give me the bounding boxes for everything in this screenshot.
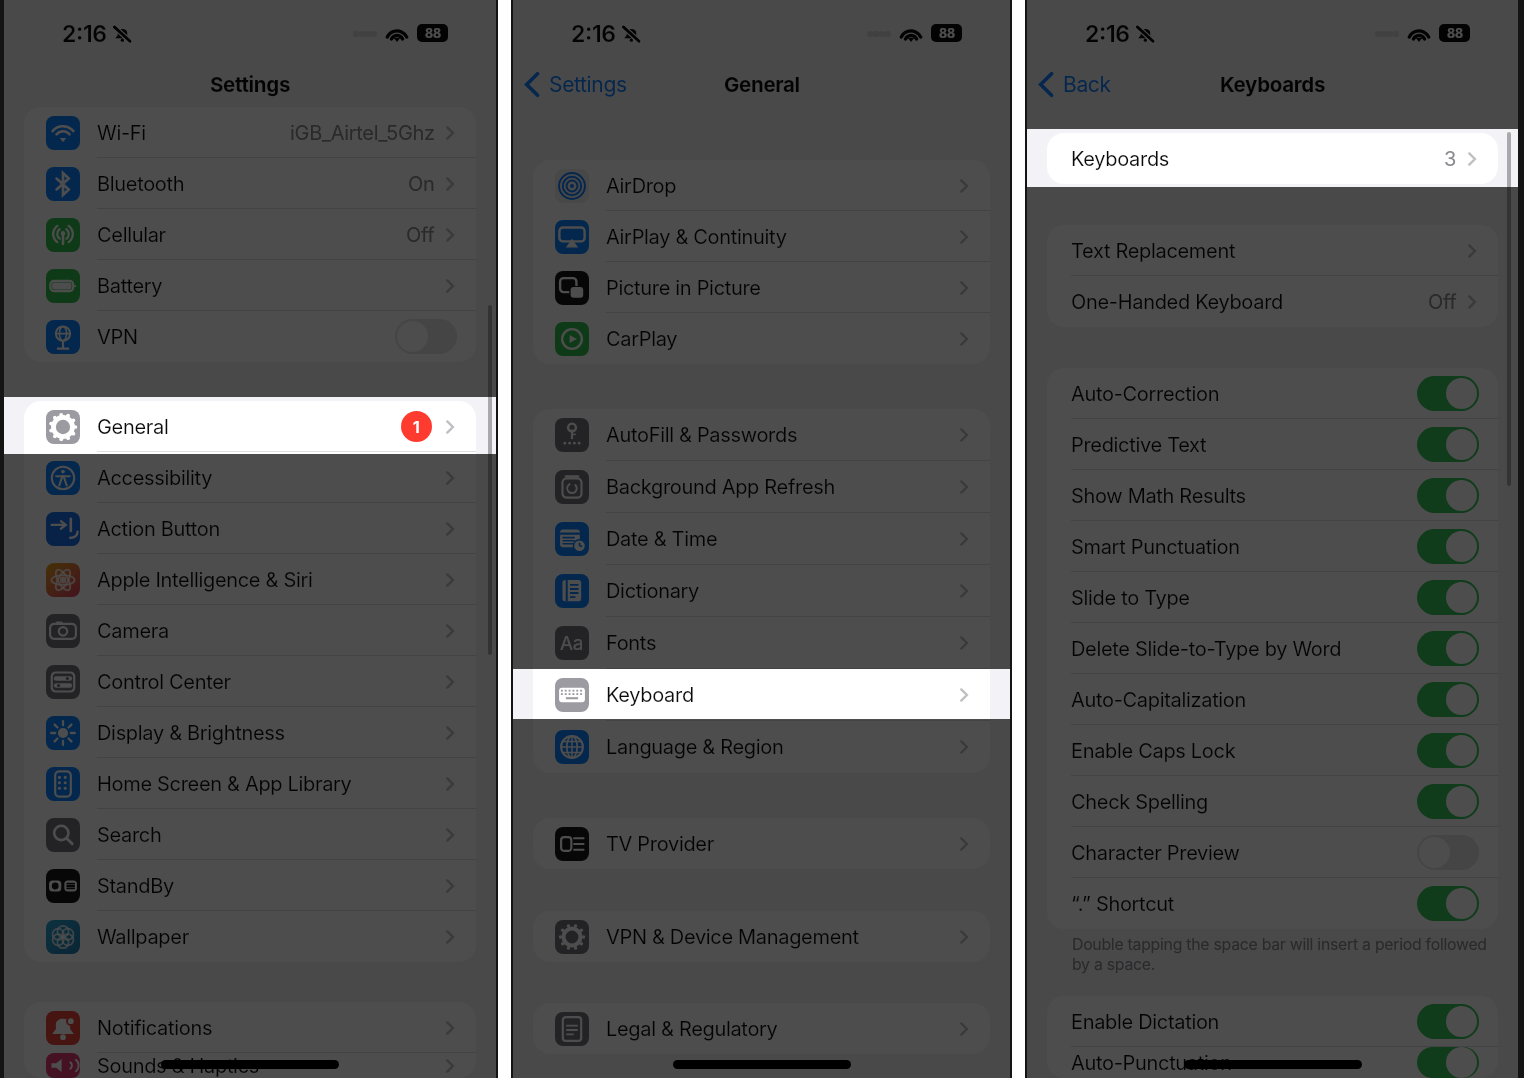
- staticText: Apple Intelligence & Siri: [97, 568, 313, 592]
- button[interactable]: Display & Brightness: [24, 707, 476, 758]
- button[interactable]: Settings: [513, 72, 631, 97]
- button[interactable]: Character Preview: [1047, 827, 1498, 878]
- button[interactable]: Wallpaper: [24, 911, 476, 962]
- staticText: Picture in Picture: [606, 276, 761, 300]
- staticText: 88: [934, 26, 960, 41]
- staticText: Control Center: [97, 670, 231, 694]
- button[interactable]: General: [24, 401, 476, 452]
- staticText: Sounds & Haptics: [97, 1054, 259, 1078]
- staticText: Predictive Text: [1071, 433, 1207, 457]
- button[interactable]: Cellular: [24, 209, 476, 260]
- button[interactable]: Camera: [24, 605, 476, 656]
- button[interactable]: Home Screen & App Library: [24, 758, 476, 809]
- staticText: 88: [420, 26, 446, 41]
- staticText: 88: [1442, 26, 1468, 41]
- staticText: Wi-Fi: [97, 121, 146, 145]
- staticText: Show Math Results: [1071, 484, 1246, 508]
- button[interactable]: Switch on: [1417, 427, 1479, 462]
- button[interactable]: AirPlay & Continuity: [533, 211, 990, 262]
- staticText: Off: [1428, 290, 1457, 314]
- button[interactable]: Auto-Punctuation: [1047, 1047, 1498, 1078]
- staticText: Search: [97, 823, 162, 847]
- button[interactable]: Smart Punctuation: [1047, 521, 1498, 572]
- button[interactable]: Switch off: [395, 319, 457, 354]
- staticText: General: [724, 72, 800, 97]
- staticText: Slide to Type: [1071, 586, 1190, 610]
- staticText: Legal & Regulatory: [606, 1017, 778, 1041]
- staticText: Aa: [560, 632, 584, 655]
- button[interactable]: One-Handed Keyboard: [1047, 276, 1498, 327]
- button[interactable]: Delete Slide-to-Type by Word: [1047, 623, 1498, 674]
- button[interactable]: Accessibility: [24, 452, 476, 503]
- staticText: Background App Refresh: [606, 475, 835, 499]
- button[interactable]: Date & Time: [533, 513, 990, 565]
- button[interactable]: Legal & Regulatory: [533, 1003, 990, 1054]
- staticText: iGB_Airtel_5Ghz: [290, 121, 435, 145]
- staticText: General: [97, 415, 169, 439]
- staticText: Auto-Punctuation: [1071, 1051, 1232, 1075]
- button[interactable]: Apple Intelligence & Siri: [24, 554, 476, 605]
- button[interactable]: Picture in Picture: [533, 262, 990, 313]
- button[interactable]: Battery: [24, 260, 476, 311]
- button[interactable]: Sounds & Haptics: [24, 1053, 476, 1078]
- button[interactable]: Dictionary: [533, 565, 990, 617]
- button[interactable]: Background App Refresh: [533, 461, 990, 513]
- staticText: TV Provider: [606, 832, 714, 856]
- button[interactable]: Switch on: [1417, 784, 1479, 819]
- button[interactable]: TV Provider: [533, 818, 990, 869]
- button[interactable]: VPN: [24, 311, 476, 362]
- button[interactable]: Bluetooth: [24, 158, 476, 209]
- button[interactable]: Check Spelling: [1047, 776, 1498, 827]
- button[interactable]: AutoFill & Passwords: [533, 409, 990, 461]
- button[interactable]: Enable Dictation: [1047, 996, 1498, 1047]
- button[interactable]: Notifications: [24, 1002, 476, 1053]
- button[interactable]: Control Center: [24, 656, 476, 707]
- button[interactable]: Predictive Text: [1047, 419, 1498, 470]
- button[interactable]: Slide to Type: [1047, 572, 1498, 623]
- button[interactable]: StandBy: [24, 860, 476, 911]
- staticText: 1: [413, 417, 420, 436]
- button[interactable]: Keyboard: [533, 669, 990, 721]
- button[interactable]: VPN & Device Management: [533, 911, 990, 962]
- staticText: Back: [1063, 72, 1111, 97]
- staticText: Enable Dictation: [1071, 1010, 1220, 1034]
- button[interactable]: Aa: [533, 617, 990, 669]
- button[interactable]: Switch on: [1417, 1047, 1479, 1078]
- staticText: Keyboards: [1071, 147, 1170, 171]
- button[interactable]: Language & Region: [533, 721, 990, 773]
- button[interactable]: Text Replacement: [1047, 225, 1498, 276]
- staticText: Check Spelling: [1071, 790, 1208, 814]
- button[interactable]: Auto-Correction: [1047, 368, 1498, 419]
- button[interactable]: CarPlay: [533, 313, 990, 364]
- staticText: Accessibility: [97, 466, 213, 490]
- button[interactable]: Wi-Fi: [24, 107, 476, 158]
- staticText: Double tapping the space bar will insert…: [1072, 935, 1502, 973]
- staticText: Cellular: [97, 223, 166, 247]
- staticText: StandBy: [97, 874, 174, 898]
- button[interactable]: Switch off: [1417, 835, 1479, 870]
- button[interactable]: Auto-Capitalization: [1047, 674, 1498, 725]
- button[interactable]: Switch on: [1417, 580, 1479, 615]
- staticText: Keyboard: [606, 683, 694, 707]
- staticText: On: [408, 172, 435, 196]
- button[interactable]: Switch on: [1417, 529, 1479, 564]
- button[interactable]: Switch on: [1417, 1004, 1479, 1039]
- button[interactable]: Switch on: [1417, 631, 1479, 666]
- staticText: Smart Punctuation: [1071, 535, 1240, 559]
- staticText: Off: [406, 223, 435, 247]
- button[interactable]: Switch on: [1417, 682, 1479, 717]
- staticText: Character Preview: [1071, 841, 1240, 865]
- button[interactable]: Show Math Results: [1047, 470, 1498, 521]
- button[interactable]: AirDrop: [533, 160, 990, 211]
- button[interactable]: Switch on: [1417, 733, 1479, 768]
- staticText: Delete Slide-to-Type by Word: [1071, 637, 1342, 661]
- button[interactable]: Back: [1027, 72, 1115, 97]
- button[interactable]: Switch on: [1417, 886, 1479, 921]
- button[interactable]: Search: [24, 809, 476, 860]
- button[interactable]: Keyboards: [1047, 133, 1498, 184]
- button[interactable]: Action Button: [24, 503, 476, 554]
- button[interactable]: Enable Caps Lock: [1047, 725, 1498, 776]
- button[interactable]: “.” Shortcut: [1047, 878, 1498, 929]
- button[interactable]: Switch on: [1417, 376, 1479, 411]
- button[interactable]: Switch on: [1417, 478, 1479, 513]
